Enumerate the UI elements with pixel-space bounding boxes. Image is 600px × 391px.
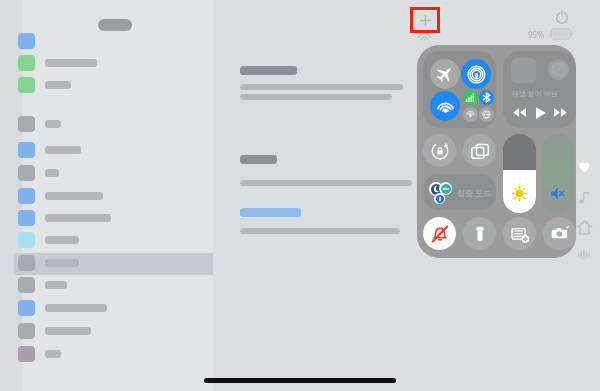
button[interactable]: AirPlay bbox=[548, 59, 569, 80]
button[interactable] bbox=[18, 55, 35, 71]
button[interactable]: Bluetooth bbox=[479, 90, 494, 105]
button[interactable] bbox=[18, 77, 35, 93]
button[interactable] bbox=[18, 300, 35, 316]
button[interactable]: Screen Mirroring bbox=[463, 134, 496, 167]
button[interactable]: Rotation Lock bbox=[423, 134, 456, 167]
button[interactable] bbox=[240, 208, 301, 217]
button[interactable] bbox=[18, 255, 35, 271]
button[interactable]: Flashlight bbox=[463, 217, 496, 250]
other: Power bbox=[556, 11, 568, 23]
button[interactable]: Cellular Data bbox=[463, 90, 478, 105]
button[interactable] bbox=[18, 210, 35, 226]
button[interactable] bbox=[18, 188, 35, 204]
button[interactable]: Previous bbox=[512, 105, 527, 120]
button[interactable] bbox=[18, 277, 35, 293]
button[interactable] bbox=[18, 142, 35, 158]
button[interactable]: AirDrop bbox=[461, 59, 491, 89]
staticText: 재생 중이 아님 bbox=[512, 89, 570, 99]
button[interactable]: Brightness bbox=[503, 134, 536, 213]
button[interactable]: Silent Mode bbox=[423, 217, 456, 250]
button[interactable]: AirPlay bbox=[503, 51, 576, 128]
staticText: 95% bbox=[528, 29, 544, 40]
staticText: 집중 모드 bbox=[457, 187, 492, 198]
button[interactable]: New Note bbox=[503, 217, 536, 250]
button[interactable] bbox=[18, 116, 35, 132]
button[interactable]: Airplane Mode bbox=[430, 59, 460, 89]
button[interactable] bbox=[18, 232, 35, 248]
button[interactable] bbox=[18, 33, 35, 49]
button[interactable]: 집중 모드 bbox=[423, 174, 496, 210]
button[interactable]: Camera bbox=[543, 217, 576, 250]
button[interactable] bbox=[18, 346, 35, 362]
button[interactable] bbox=[18, 165, 35, 181]
button[interactable]: Add bbox=[413, 10, 437, 30]
button[interactable]: Volume bbox=[541, 134, 574, 213]
button[interactable]: VPN bbox=[479, 107, 494, 122]
button[interactable]: Wi-Fi bbox=[430, 91, 460, 121]
button[interactable] bbox=[18, 323, 35, 339]
button[interactable]: Play bbox=[533, 105, 548, 120]
button[interactable]: Personal Hotspot bbox=[463, 107, 478, 122]
button[interactable]: Next bbox=[553, 105, 568, 120]
